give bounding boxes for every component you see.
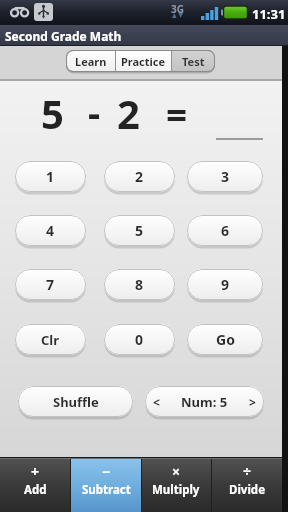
staticText: - (88, 86, 101, 138)
staticText: Shuffle (53, 393, 99, 411)
staticText: > (249, 394, 256, 410)
staticText: ÷ (243, 462, 252, 479)
button[interactable]: 1 (15, 161, 86, 192)
button[interactable]: 2 (104, 161, 175, 192)
button[interactable]: − (71, 458, 141, 512)
staticText: 11:31 (252, 5, 286, 23)
staticText: 8 (135, 275, 144, 294)
staticText: 3G (171, 2, 184, 16)
staticText: Second Grade Math (5, 28, 122, 44)
staticText: Divide (229, 482, 265, 498)
staticText: < (153, 394, 160, 410)
staticText: − (102, 462, 111, 479)
button[interactable]: Clr (15, 324, 86, 355)
staticText: 2 (135, 167, 144, 186)
staticText: = (166, 89, 188, 139)
staticText: 4 (46, 221, 55, 240)
button[interactable]: 6 (187, 215, 263, 246)
staticText: Practice (121, 54, 166, 69)
button[interactable]: 9 (187, 269, 263, 300)
button[interactable]: Shuffle (18, 386, 133, 417)
button[interactable]: 0 (104, 324, 175, 355)
staticText: Test (182, 54, 205, 69)
staticText: 6 (221, 221, 230, 240)
staticText: Add (24, 482, 47, 498)
button[interactable]: 5 (104, 215, 175, 246)
button[interactable]: × (141, 458, 211, 512)
staticText: 5 (135, 221, 144, 240)
button[interactable]: + (0, 458, 70, 512)
button[interactable]: Practice (116, 51, 171, 71)
staticText: Clr (41, 331, 60, 349)
staticText: 9 (221, 275, 230, 294)
button[interactable]: ÷ (212, 458, 282, 512)
button[interactable]: Learn (67, 51, 115, 71)
staticText: 3 (221, 167, 230, 186)
button[interactable]: 3 (187, 161, 263, 192)
staticText: 0 (135, 330, 144, 349)
staticText: Learn (75, 54, 107, 69)
button[interactable]: Num: 5 (145, 386, 264, 417)
button[interactable]: Go (187, 324, 263, 355)
staticText: 5 (41, 86, 64, 140)
staticText: Multiply (152, 482, 200, 498)
staticText: 7 (46, 275, 55, 294)
staticText: Subtract (82, 482, 131, 498)
staticText: Num: 5 (181, 393, 228, 411)
button[interactable]: Test (172, 51, 214, 71)
button[interactable]: 4 (15, 215, 86, 246)
button[interactable]: 8 (104, 269, 175, 300)
staticText: + (31, 462, 40, 479)
staticText: 2 (117, 86, 140, 140)
staticText: × (172, 462, 181, 479)
staticText: 1 (46, 167, 55, 186)
button[interactable]: 7 (15, 269, 86, 300)
staticText: Go (216, 330, 235, 349)
